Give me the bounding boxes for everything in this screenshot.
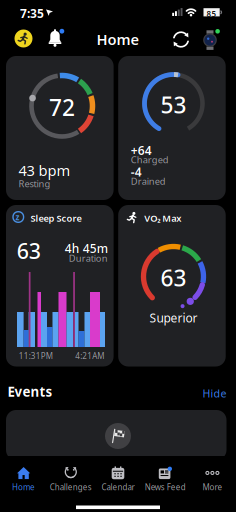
staticText: Sleep Score xyxy=(30,212,81,224)
staticText: 63 xyxy=(160,263,186,293)
button[interactable]: Notifications xyxy=(46,29,64,47)
button[interactable]: More xyxy=(189,456,236,496)
button[interactable]: Home xyxy=(0,456,47,496)
button[interactable]: News Feed xyxy=(142,456,189,496)
staticText: Duration xyxy=(69,252,108,264)
button[interactable]: Profile xyxy=(13,28,33,48)
staticText: Home xyxy=(12,482,35,492)
staticText: 85 xyxy=(206,9,216,19)
button[interactable]: 72 xyxy=(6,56,114,200)
staticText: VO₂ Max xyxy=(144,212,181,224)
staticText: Home xyxy=(96,29,139,49)
staticText: 43 bpm xyxy=(18,160,70,180)
button[interactable]: Connected device xyxy=(200,29,220,50)
staticText: Resting xyxy=(18,177,50,190)
button[interactable]: Event xyxy=(6,410,226,460)
staticText: +64 xyxy=(131,142,152,158)
button[interactable]: Calendar xyxy=(94,456,142,496)
staticText: News Feed xyxy=(145,482,186,492)
button[interactable]: VO₂ Max xyxy=(118,205,226,366)
staticText: More xyxy=(202,482,222,492)
staticText: Hide xyxy=(202,386,226,400)
staticText: 72 xyxy=(49,92,75,122)
button[interactable]: 53 xyxy=(118,56,226,200)
staticText: Charged xyxy=(131,153,169,166)
staticText: 53 xyxy=(160,90,186,120)
staticText: 63 xyxy=(17,236,41,265)
staticText: Superior xyxy=(149,310,197,326)
staticText: 7:35 xyxy=(20,5,44,21)
button[interactable]: Challenges xyxy=(47,456,94,496)
staticText: -4 xyxy=(131,164,142,180)
staticText: Challenges xyxy=(50,482,92,492)
staticText: 4:21AM xyxy=(75,350,104,361)
staticText: z xyxy=(16,212,20,222)
staticText: 11:31PM xyxy=(19,350,53,361)
staticText: Drained xyxy=(131,175,166,187)
button[interactable]: z xyxy=(6,205,114,366)
button[interactable]: Sync xyxy=(170,28,192,50)
staticText: 4h 45m xyxy=(65,240,108,256)
button[interactable]: Hide xyxy=(186,386,226,400)
staticText: Calendar xyxy=(101,482,134,492)
staticText: Events xyxy=(7,383,52,400)
